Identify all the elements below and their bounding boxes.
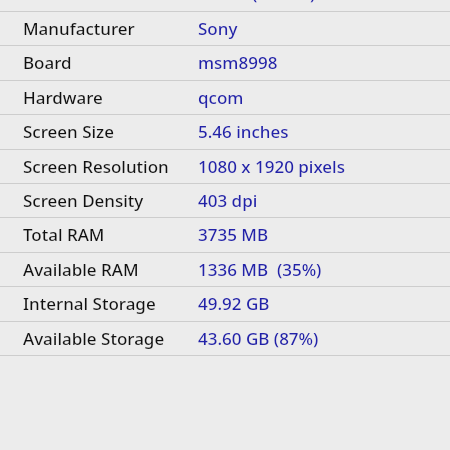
button[interactable]: Hardware: [0, 81, 450, 114]
button[interactable]: Board: [0, 46, 450, 79]
staticText: 403 dpi: [198, 189, 258, 212]
button[interactable]: Screen Resolution: [0, 150, 450, 183]
staticText: Screen Size: [23, 120, 114, 143]
staticText: 49.92 GB: [198, 292, 270, 315]
button[interactable]: Screen Density: [0, 184, 450, 217]
staticText: Sony: [198, 17, 238, 40]
staticText: Screen Density: [23, 189, 144, 212]
staticText: (: [252, 0, 258, 5]
staticText: Board: [23, 51, 72, 74]
button[interactable]: Internal Storage: [0, 287, 450, 320]
button[interactable]: Manufacturer: [0, 12, 450, 45]
staticText: Available Storage: [23, 327, 165, 350]
staticText: 43.60 GB (87%): [198, 327, 319, 350]
staticText: qcom: [198, 86, 244, 109]
staticText: ): [310, 0, 316, 5]
staticText: msm8998: [198, 51, 278, 74]
staticText: Manufacturer: [23, 17, 135, 40]
staticText: Internal Storage: [23, 292, 156, 315]
staticText: Screen Resolution: [23, 155, 169, 178]
staticText: 5.46 inches: [198, 120, 289, 143]
button[interactable]: Available RAM: [0, 253, 450, 286]
staticText: 3735 MB: [198, 223, 269, 246]
staticText: 1336 MB (35%): [198, 258, 322, 281]
button[interactable]: Total RAM: [0, 218, 450, 251]
staticText: Available RAM: [23, 258, 139, 281]
staticText: Total RAM: [23, 223, 105, 246]
staticText: 1080 x 1920 pixels: [198, 155, 345, 178]
button[interactable]: Screen Size: [0, 115, 450, 148]
button[interactable]: Available Storage: [0, 322, 450, 355]
staticText: Hardware: [23, 86, 103, 109]
